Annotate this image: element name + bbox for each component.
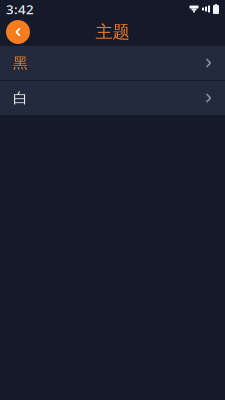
button[interactable]: 返回 xyxy=(4,18,32,46)
button[interactable]: 黑 xyxy=(0,46,225,80)
staticText: 黑 xyxy=(13,54,28,72)
staticText: 白 xyxy=(13,89,28,107)
staticText: 3:42 xyxy=(6,0,34,18)
staticText: 主题 xyxy=(95,21,129,43)
button[interactable]: 白 xyxy=(0,81,225,115)
